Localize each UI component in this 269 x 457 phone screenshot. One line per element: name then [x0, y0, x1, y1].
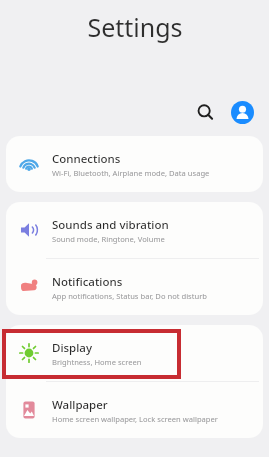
button[interactable]: Display [6, 325, 263, 381]
staticText: Home screen wallpaper, Lock screen wallp… [52, 414, 218, 424]
button[interactable]: Notifications [6, 259, 263, 315]
button[interactable]: Account [226, 96, 258, 128]
button[interactable]: Connections [6, 136, 263, 192]
staticText: Wi-Fi, Bluetooth, Airplane mode, Data us… [52, 168, 210, 178]
staticText: Sounds and vibration [52, 217, 169, 233]
staticText: Connections [52, 151, 121, 167]
staticText: Brightness, Home screen [52, 357, 142, 367]
staticText: App notifications, Status bar, Do not di… [52, 291, 207, 301]
staticText: Wallpaper [52, 397, 108, 413]
staticText: Display [52, 340, 92, 356]
staticText: Settings [87, 10, 183, 44]
button[interactable]: Wallpaper [6, 382, 263, 438]
staticText: Notifications [52, 274, 123, 290]
button[interactable]: Search [189, 96, 221, 128]
staticText: Sound mode, Ringtone, Volume [52, 234, 165, 244]
button[interactable]: Sounds and vibration [6, 202, 263, 258]
